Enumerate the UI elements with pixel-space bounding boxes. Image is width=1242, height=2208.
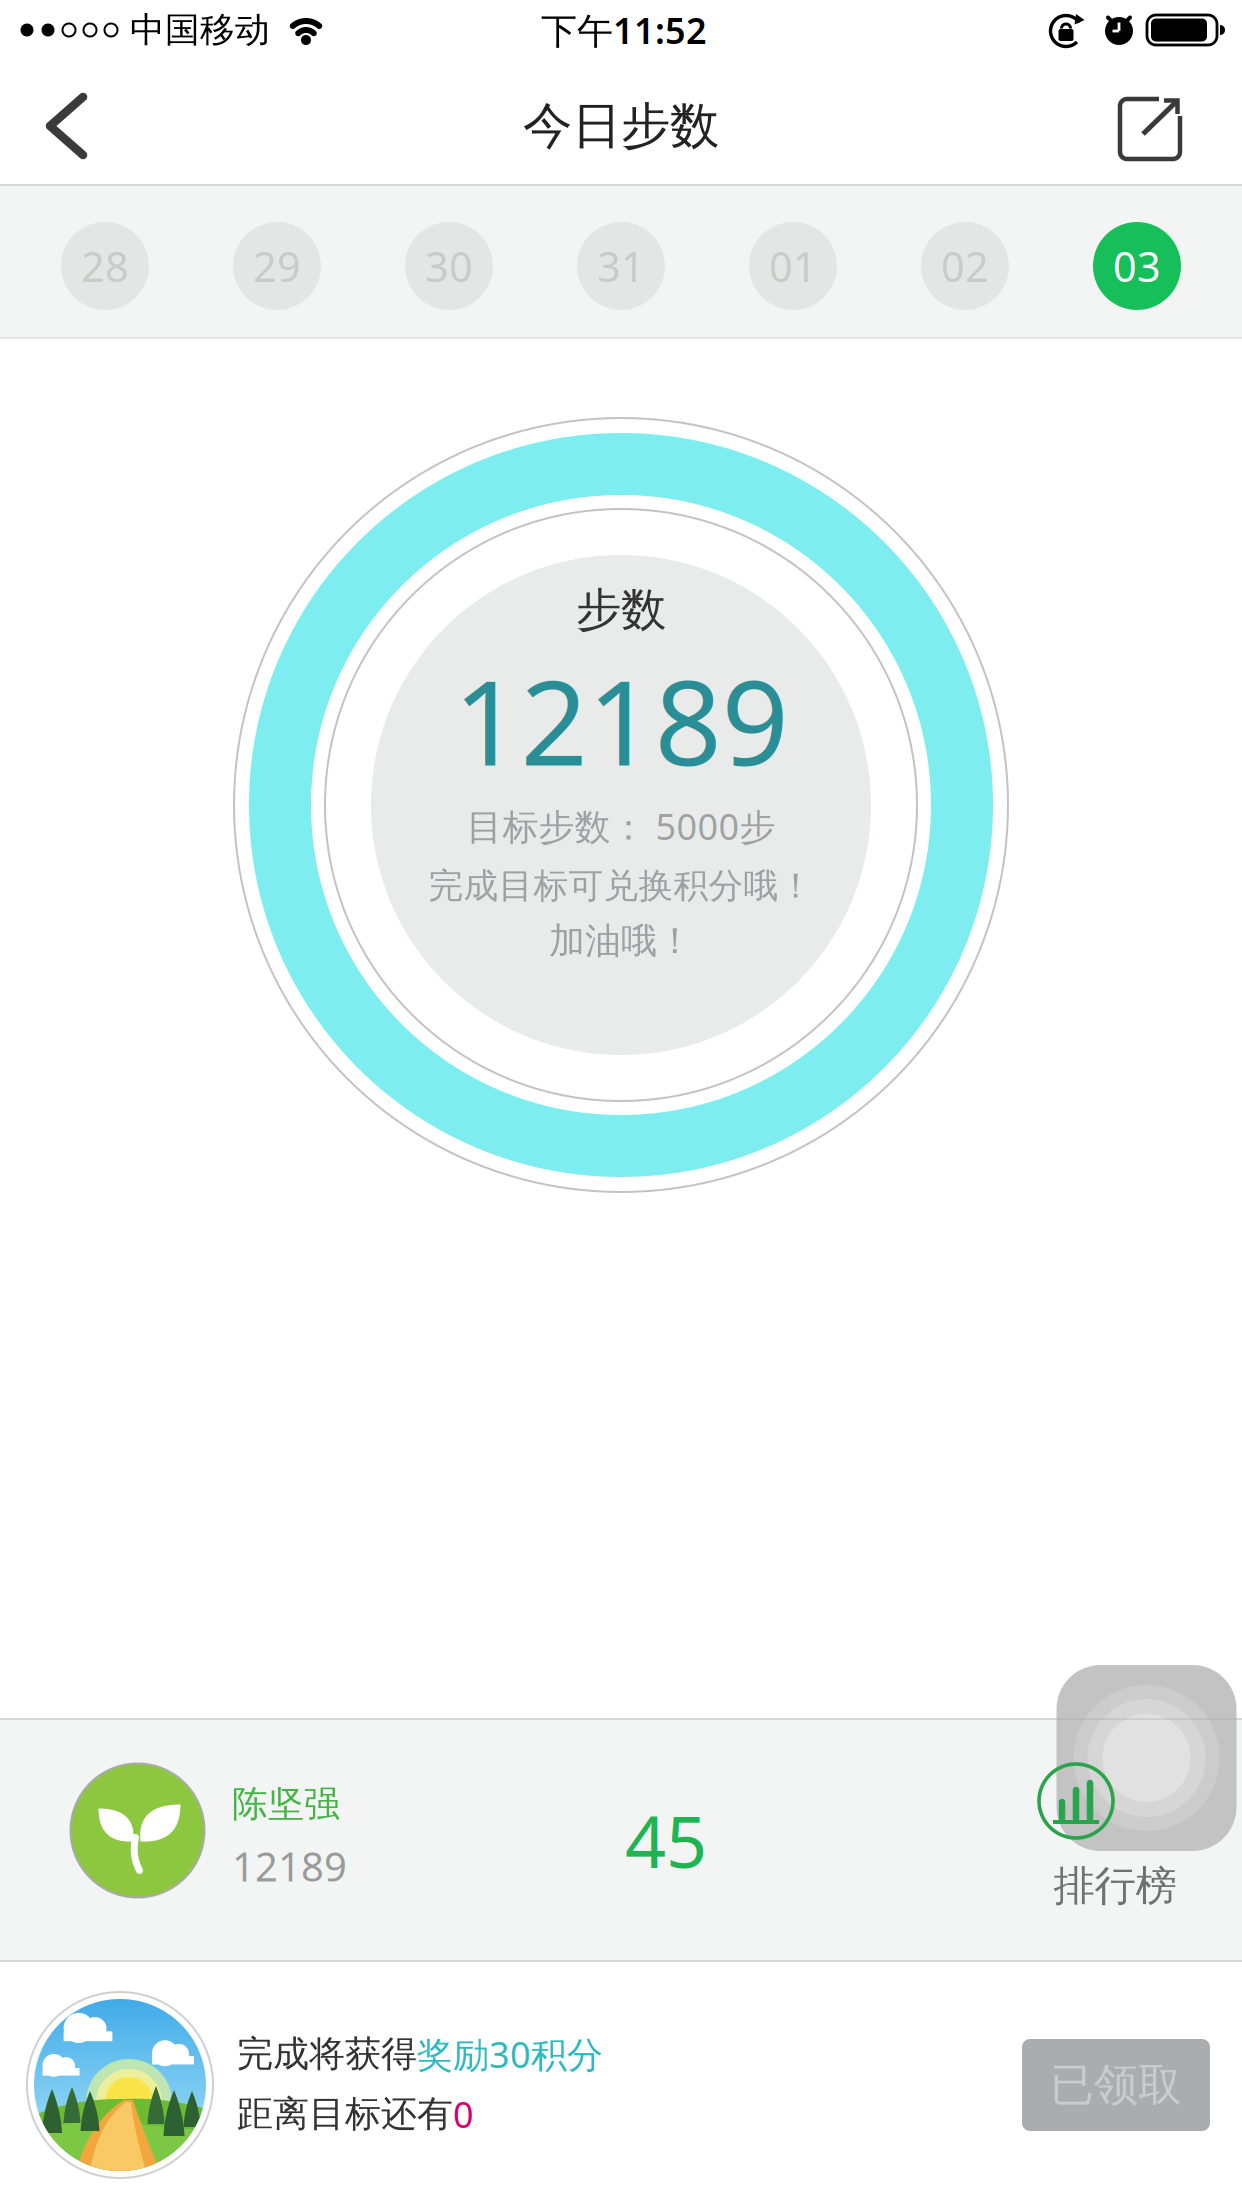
- button[interactable]: 28: [61, 222, 149, 310]
- staticText: 02: [941, 239, 989, 293]
- button[interactable]: Share: [1118, 93, 1184, 159]
- button[interactable]: Back: [16, 76, 116, 176]
- staticText: 完成目标可兑换积分哦！: [428, 865, 813, 907]
- button[interactable]: 30: [405, 222, 493, 310]
- staticText: 0: [453, 2090, 474, 2138]
- staticText: 03: [1113, 239, 1161, 293]
- button[interactable]: 31: [577, 222, 665, 310]
- staticText: 31: [597, 239, 645, 293]
- button[interactable]: 01: [749, 222, 837, 310]
- staticText: 12189: [453, 642, 788, 798]
- staticText: 陈坚强: [232, 1782, 340, 1826]
- staticText: 奖励30积分: [417, 2030, 603, 2078]
- staticText: 中国移动: [130, 9, 270, 51]
- button[interactable]: 03: [1093, 222, 1181, 310]
- staticText: 12189: [232, 1839, 347, 1892]
- staticText: 完成将获得: [237, 2032, 417, 2076]
- button[interactable]: 29: [233, 222, 321, 310]
- staticText: 加油哦！: [549, 919, 693, 963]
- button[interactable]: 已领取: [1022, 2039, 1210, 2131]
- button[interactable]: AssistiveTouch: [1056, 1665, 1236, 1851]
- staticText: 已领取: [1050, 2058, 1182, 2112]
- staticText: 下午11:52: [541, 6, 707, 54]
- staticText: 今日步数: [523, 96, 719, 156]
- staticText: 28: [81, 239, 129, 293]
- staticText: 距离目标还有: [237, 2092, 453, 2136]
- button[interactable]: 02: [921, 222, 1009, 310]
- staticText: 45: [625, 1792, 707, 1888]
- staticText: 排行榜: [1053, 1861, 1176, 1911]
- staticText: 步数: [576, 582, 666, 638]
- staticText: 30: [425, 239, 473, 293]
- button[interactable]: 排行榜: [1000, 1758, 1220, 1928]
- staticText: 29: [253, 239, 301, 293]
- staticText: 目标步数： 5000步: [466, 802, 775, 850]
- staticText: 01: [769, 239, 817, 293]
